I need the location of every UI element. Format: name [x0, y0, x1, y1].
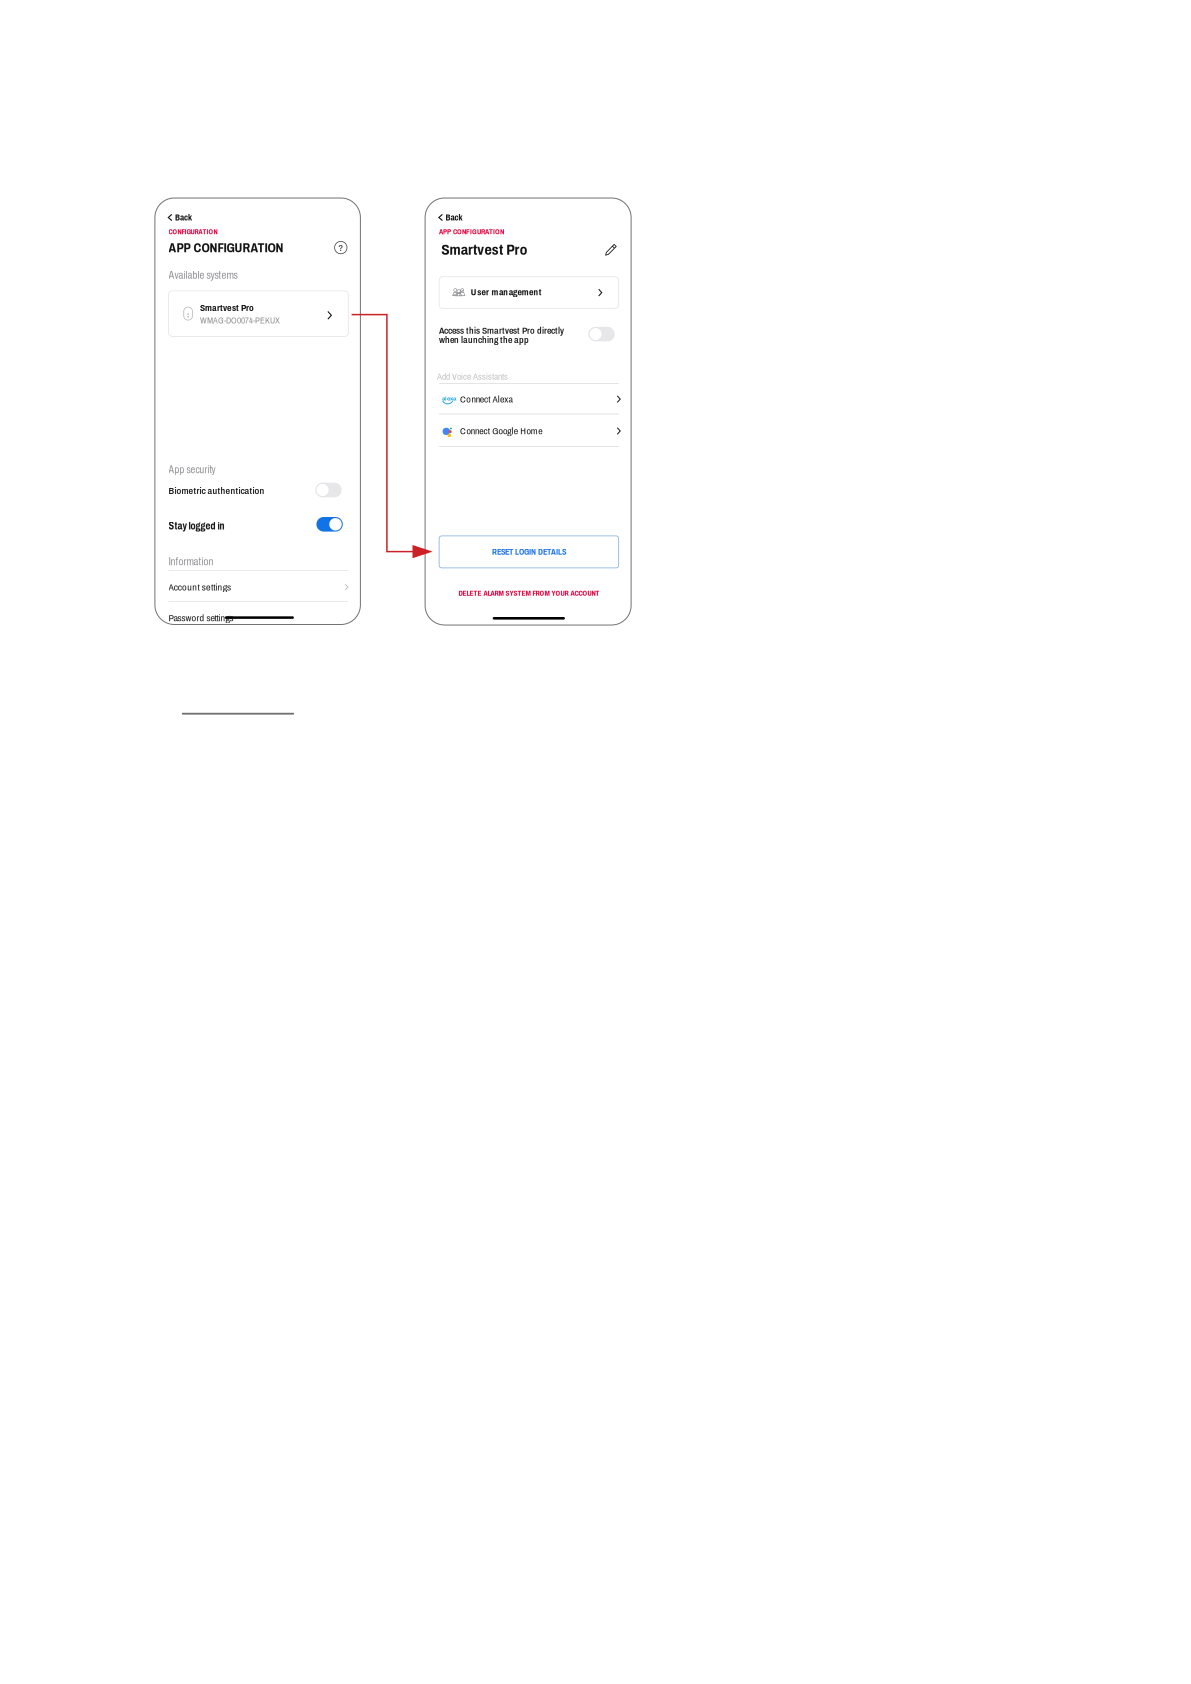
staticText: Smartvest Pro: [200, 303, 254, 313]
button[interactable]: Edit system name: [605, 243, 617, 256]
staticText: Smartvest Pro: [441, 242, 528, 258]
staticText: App security: [168, 464, 215, 475]
button[interactable]: Account settings: [168, 579, 348, 596]
staticText: APP CONFIGURATION: [168, 241, 283, 255]
staticText: APP CONFIGURATION: [439, 228, 504, 236]
button[interactable]: Help: [334, 241, 347, 254]
staticText: alexa: [442, 395, 456, 402]
staticText: Stay logged in: [168, 521, 224, 532]
staticText: User management: [471, 287, 542, 297]
button[interactable]: Back: [165, 209, 195, 226]
button[interactable]: Password settings: [168, 609, 348, 626]
staticText: Back: [175, 212, 192, 223]
staticText: WMAG-DO0074-PEKUX: [200, 316, 280, 325]
staticText: Password settings: [168, 613, 233, 623]
button[interactable]: RESET LOGIN DETAILS: [439, 536, 619, 568]
staticText: ?: [338, 242, 343, 253]
button[interactable]: Access this Smartvest Pro directly when …: [588, 327, 615, 341]
staticText: Add Voice Assistants: [437, 371, 508, 382]
button[interactable]: DELETE ALARM SYSTEM FROM YOUR ACCOUNT: [439, 587, 619, 600]
button[interactable]: alexa: [441, 385, 621, 413]
staticText: Connect Alexa: [460, 394, 512, 404]
button[interactable]: Connect Google Home: [441, 417, 621, 445]
button[interactable]: User management: [439, 277, 619, 308]
staticText: RESET LOGIN DETAILS: [492, 547, 566, 556]
staticText: DELETE ALARM SYSTEM FROM YOUR ACCOUNT: [458, 589, 599, 597]
staticText: Connect Google Home: [460, 426, 542, 436]
button[interactable]: Back: [435, 209, 466, 226]
staticText: Access this Smartvest Pro directly: [439, 325, 564, 336]
staticText: Information: [168, 556, 213, 567]
button[interactable]: Biometric authentication: [315, 483, 342, 497]
button[interactable]: Smartvest Pro: [168, 291, 348, 336]
staticText: CONFIGURATION: [168, 228, 217, 236]
staticText: Back: [446, 212, 463, 223]
staticText: Available systems: [168, 270, 237, 281]
staticText: Biometric authentication: [168, 485, 264, 496]
button[interactable]: Stay logged in: [316, 517, 343, 532]
staticText: Account settings: [168, 582, 231, 592]
staticText: when launching the app: [439, 334, 529, 345]
